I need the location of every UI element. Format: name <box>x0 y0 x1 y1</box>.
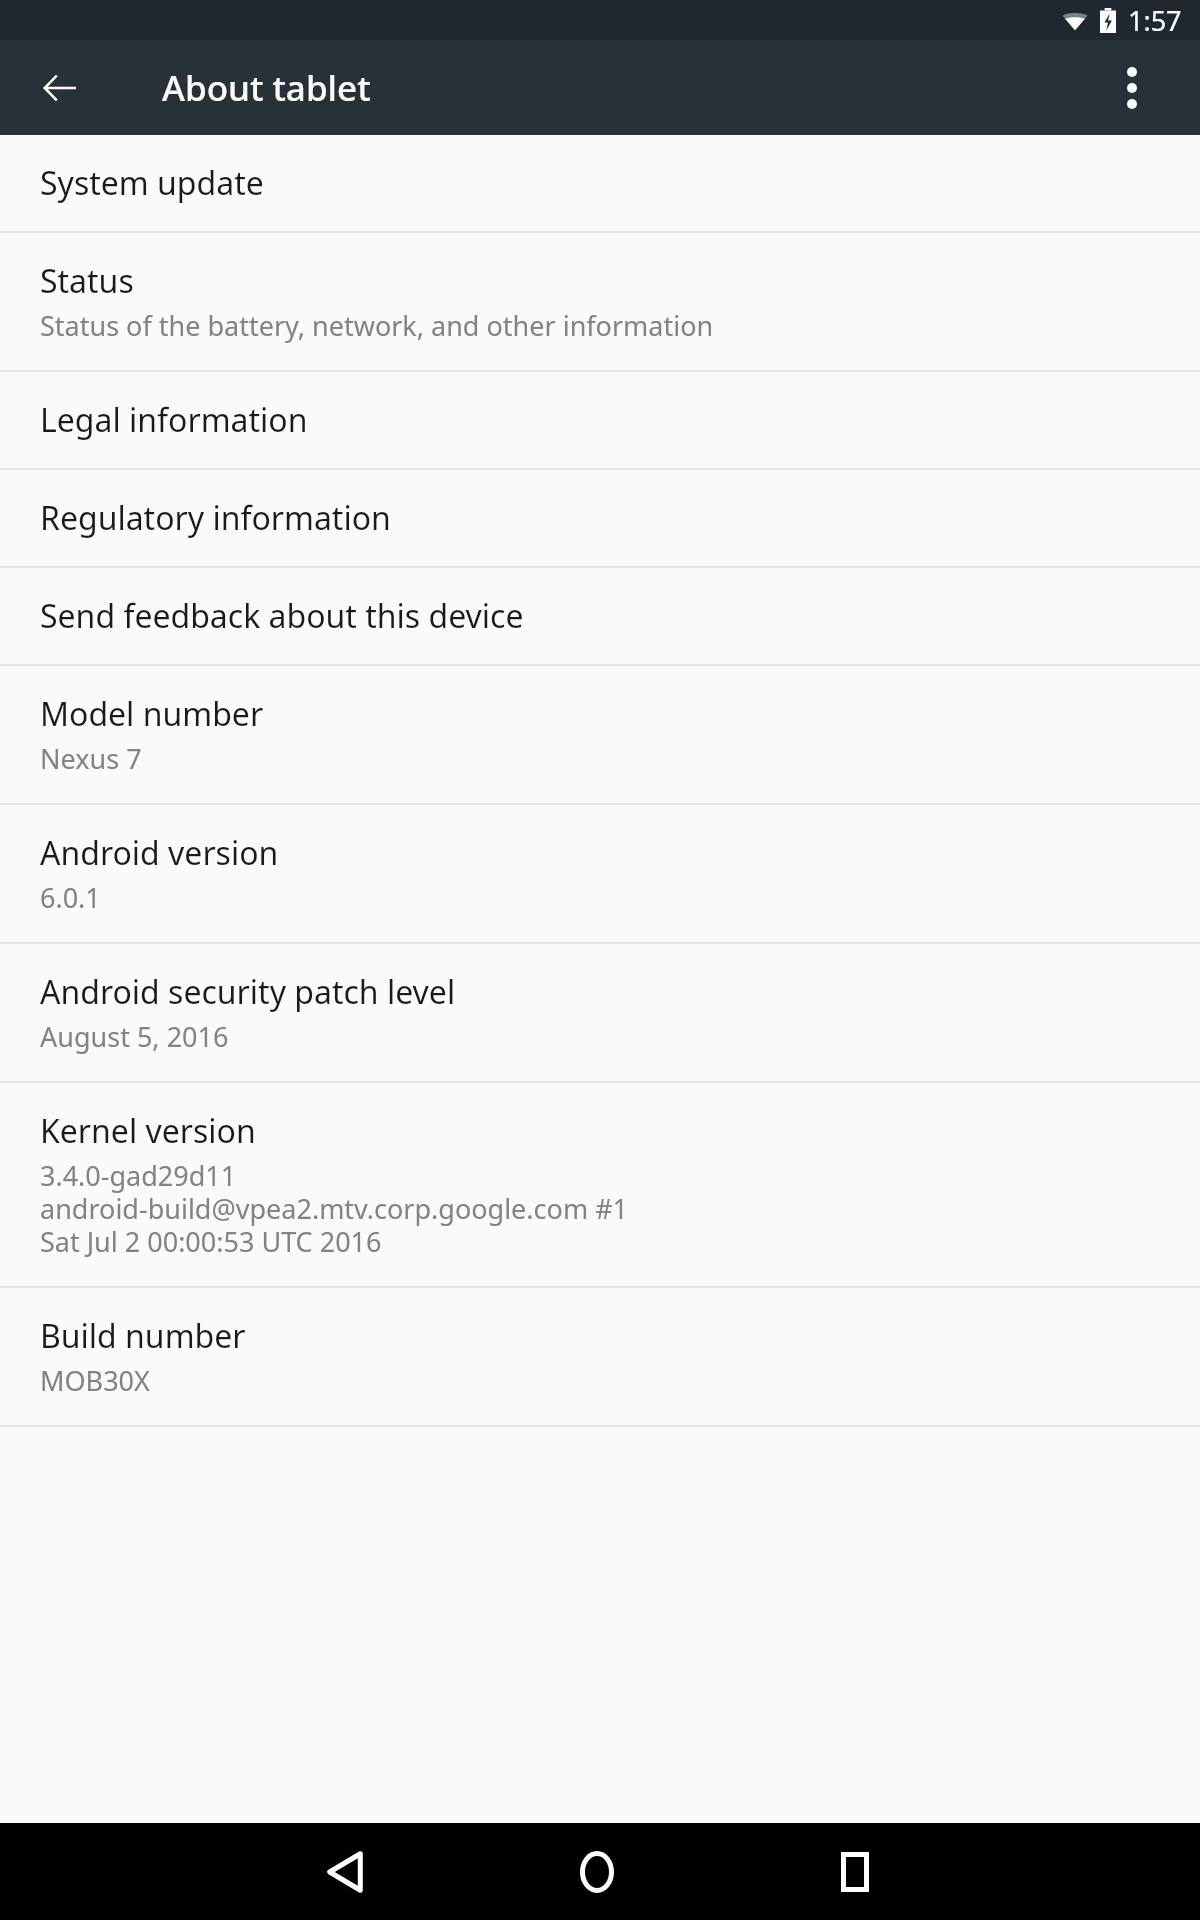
button[interactable]: Home <box>552 1827 642 1917</box>
staticText: About tablet <box>162 64 371 112</box>
staticText: 3.4.0-gad29d11 android-build@vpea2.mtv.c… <box>40 1157 629 1260</box>
button[interactable]: Send feedback about this device <box>0 568 1200 664</box>
button[interactable]: Recent apps <box>810 1827 900 1917</box>
button[interactable]: Navigate up <box>24 52 96 124</box>
button[interactable]: Model number <box>0 666 1200 803</box>
button[interactable]: Kernel version <box>0 1083 1200 1286</box>
staticText: Send feedback about this device <box>40 594 524 638</box>
staticText: Nexus 7 <box>40 740 142 777</box>
staticText: 1:57 <box>1128 2 1182 39</box>
button[interactable]: System update <box>0 135 1200 231</box>
button[interactable]: Regulatory information <box>0 470 1200 566</box>
staticText: Status of the battery, network, and othe… <box>40 307 714 344</box>
staticText: 6.0.1 <box>40 879 101 916</box>
staticText: Build number <box>40 1314 246 1358</box>
staticText: Android version <box>40 831 279 875</box>
button[interactable]: Build number <box>0 1288 1200 1425</box>
staticText: Regulatory information <box>40 496 391 540</box>
staticText: Android security patch level <box>40 970 456 1014</box>
button[interactable]: Status <box>0 233 1200 370</box>
button[interactable]: More options <box>1096 52 1168 124</box>
staticText: Legal information <box>40 398 308 442</box>
staticText: System update <box>40 161 264 205</box>
button[interactable]: Back <box>300 1827 390 1917</box>
staticText: Kernel version <box>40 1109 256 1153</box>
button[interactable]: Legal information <box>0 372 1200 468</box>
button[interactable]: Android security patch level <box>0 944 1200 1081</box>
staticText: MOB30X <box>40 1362 150 1399</box>
button[interactable]: Android version <box>0 805 1200 942</box>
staticText: August 5, 2016 <box>40 1018 229 1055</box>
staticText: Model number <box>40 692 264 736</box>
staticText: Status <box>40 259 134 303</box>
